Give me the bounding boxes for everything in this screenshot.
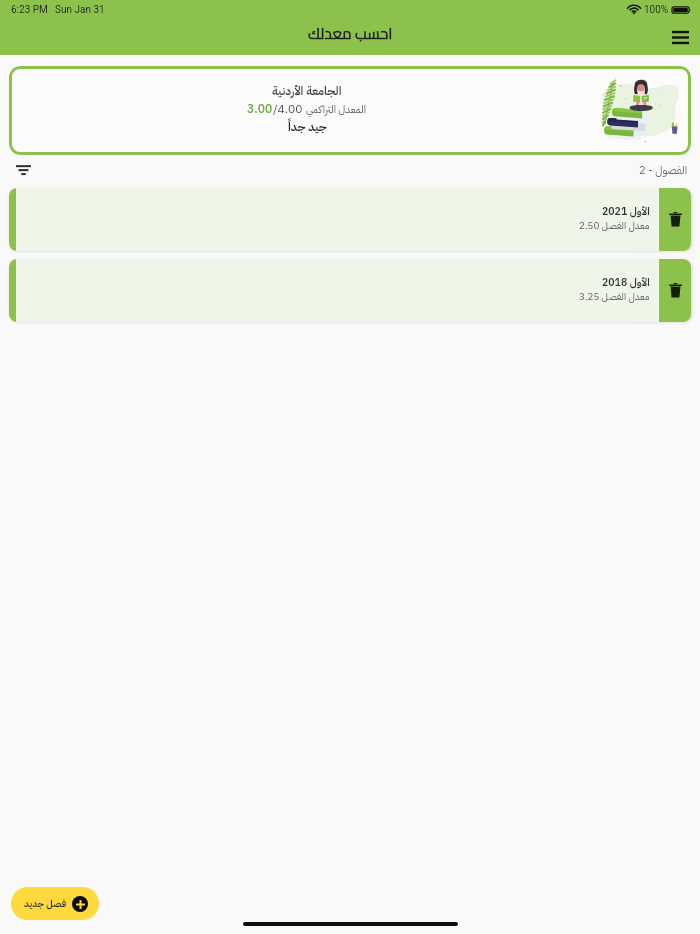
button[interactable]: فصل جديد xyxy=(11,887,99,920)
button[interactable]: الأول 2018 xyxy=(9,259,691,322)
staticText: معدل الفصل 3.25 xyxy=(579,289,650,304)
staticText: /4.00 xyxy=(273,100,303,118)
staticText: الجامعة الأردنية xyxy=(272,82,342,100)
staticText: Sun Jan 31 xyxy=(55,4,105,16)
staticText: الأول 2018 xyxy=(602,275,650,291)
staticText: معدل الفصل 2.50 xyxy=(579,218,650,233)
button[interactable]: Menu xyxy=(660,17,700,57)
staticText: الفصول - 2 xyxy=(639,162,688,179)
button[interactable]: Delete xyxy=(659,188,691,251)
staticText: 3.00 xyxy=(247,100,273,118)
staticText: 100% xyxy=(644,4,669,16)
staticText: جيد جداً xyxy=(288,118,327,136)
staticText: 6:23 PM xyxy=(11,4,48,16)
button[interactable]: الجامعة الأردنية xyxy=(9,66,691,155)
staticText: المعدل التراكمي xyxy=(306,102,367,117)
button[interactable]: Sort xyxy=(9,156,37,184)
staticText: الأول 2021 xyxy=(602,204,650,220)
button[interactable]: Delete xyxy=(659,259,691,322)
staticText: فصل جديد xyxy=(24,897,67,911)
staticText: احسب معدلك xyxy=(308,19,393,47)
button[interactable]: الأول 2021 xyxy=(9,188,691,251)
